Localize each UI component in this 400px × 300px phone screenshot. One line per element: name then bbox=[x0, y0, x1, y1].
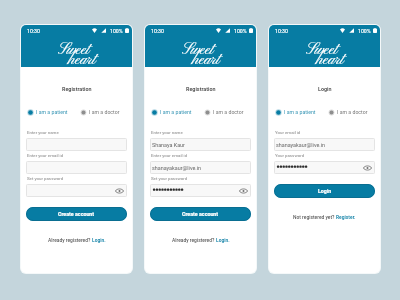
staticText: Shanaya Kaur bbox=[152, 142, 185, 148]
staticText: 10:30 bbox=[275, 28, 288, 34]
staticText: 100% bbox=[358, 28, 371, 34]
button[interactable]: Shanaya Kaur bbox=[150, 138, 251, 151]
staticText: Set your password bbox=[27, 176, 64, 181]
button[interactable]: Show password bbox=[26, 184, 127, 197]
staticText: Already registered? bbox=[172, 237, 216, 243]
button[interactable]: shanayakaur@live.in bbox=[150, 161, 251, 174]
staticText: 10:30 bbox=[151, 28, 164, 34]
staticText: I am a doctor bbox=[89, 109, 120, 115]
staticText: Enter your name bbox=[27, 130, 59, 135]
button[interactable]: I am a patient bbox=[276, 109, 316, 115]
button[interactable]: I am a doctor bbox=[81, 109, 120, 115]
staticText: 100% bbox=[234, 28, 247, 34]
button[interactable]: Show password bbox=[150, 184, 251, 197]
button[interactable]: Create account bbox=[150, 207, 251, 221]
staticText: 100% bbox=[110, 28, 123, 34]
staticText: Enter your email id bbox=[27, 153, 64, 158]
button[interactable]: shanayakaur@live.in bbox=[274, 138, 375, 151]
other: Show password bbox=[115, 188, 124, 194]
staticText: Already registered? bbox=[48, 237, 92, 243]
staticText: I am a doctor bbox=[337, 109, 368, 115]
staticText: Your email id bbox=[275, 130, 301, 135]
button[interactable]: I am a patient bbox=[152, 109, 192, 115]
other: Show password bbox=[239, 188, 248, 194]
staticText: Create account bbox=[182, 211, 219, 217]
button[interactable] bbox=[26, 161, 127, 174]
staticText: Registration bbox=[62, 86, 92, 92]
staticText: Sweet bbox=[182, 40, 214, 60]
button[interactable]: Register. bbox=[336, 214, 356, 220]
button[interactable]: Create account bbox=[26, 207, 127, 221]
staticText: shanayakaur@live.in bbox=[276, 142, 326, 148]
staticText: Enter your email id bbox=[151, 153, 188, 158]
staticText: Login bbox=[318, 188, 332, 194]
button[interactable]: Show password bbox=[274, 161, 375, 174]
staticText: heart bbox=[316, 50, 344, 70]
staticText: Sweet bbox=[58, 40, 90, 60]
staticText: Your password bbox=[275, 153, 305, 158]
other: Show password bbox=[363, 165, 372, 171]
button[interactable]: I am a patient bbox=[28, 109, 68, 115]
button[interactable]: Login. bbox=[216, 237, 230, 243]
button[interactable]: Login bbox=[274, 184, 375, 198]
staticText: I am a doctor bbox=[213, 109, 244, 115]
staticText: Registration bbox=[186, 86, 216, 92]
staticText: Not registered yet? bbox=[293, 214, 336, 220]
button[interactable] bbox=[26, 138, 127, 151]
staticText: 10:30 bbox=[27, 28, 40, 34]
staticText: Set your password bbox=[151, 176, 188, 181]
staticText: shanayakaur@live.in bbox=[152, 165, 202, 171]
staticText: I am a patient bbox=[284, 109, 316, 115]
button[interactable]: Login. bbox=[92, 237, 106, 243]
button[interactable]: I am a doctor bbox=[205, 109, 244, 115]
staticText: Enter your name bbox=[151, 130, 183, 135]
staticText: I am a patient bbox=[160, 109, 192, 115]
staticText: Sweet bbox=[306, 40, 338, 60]
button[interactable]: I am a doctor bbox=[329, 109, 368, 115]
staticText: heart bbox=[68, 50, 96, 70]
staticText: I am a patient bbox=[36, 109, 68, 115]
staticText: heart bbox=[192, 50, 220, 70]
staticText: Login bbox=[318, 86, 332, 92]
staticText: Create account bbox=[58, 211, 95, 217]
